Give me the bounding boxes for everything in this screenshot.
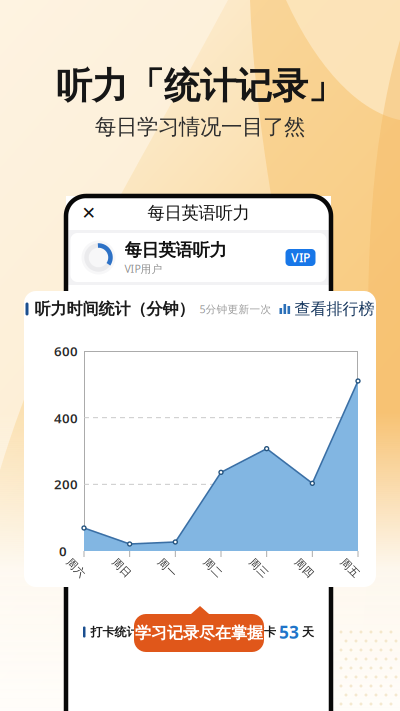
staticText: 打卡 bbox=[252, 625, 276, 639]
staticText: 天 bbox=[302, 625, 314, 639]
staticText: VIP用户 bbox=[124, 261, 162, 276]
staticText: 听力时间统计（分钟） bbox=[34, 299, 194, 319]
staticText: ✕ bbox=[81, 203, 96, 223]
staticText: 打卡统计 bbox=[90, 625, 138, 639]
staticText: 周日 bbox=[111, 561, 133, 574]
staticText: 周六 bbox=[65, 561, 87, 574]
button[interactable]: VIP bbox=[285, 249, 315, 266]
button[interactable]: 查看排行榜 bbox=[279, 299, 374, 319]
staticText: 周二 bbox=[202, 561, 224, 574]
staticText: 每日学习情况一目了然 bbox=[95, 114, 305, 140]
staticText: 听力「统计记录」 bbox=[56, 64, 344, 108]
button[interactable]: Close bbox=[74, 198, 104, 228]
staticText: 0 bbox=[59, 542, 67, 560]
staticText: 53 bbox=[279, 620, 299, 643]
staticText: 周一 bbox=[156, 561, 178, 574]
staticText: 600 bbox=[54, 342, 78, 360]
button[interactable]: 学习记录尽在掌握 bbox=[134, 606, 264, 652]
staticText: 周三 bbox=[248, 561, 270, 574]
staticText: 400 bbox=[54, 409, 78, 427]
staticText: 查看排行榜 bbox=[294, 299, 374, 319]
staticText: 周四 bbox=[293, 561, 315, 574]
staticText: 200 bbox=[54, 475, 78, 493]
staticText: VIP bbox=[291, 249, 310, 265]
staticText: 周五 bbox=[339, 561, 361, 574]
staticText: 5分钟更新一次 bbox=[199, 302, 271, 316]
staticText: 每日英语听力 bbox=[147, 202, 249, 224]
staticText: 每日英语听力 bbox=[124, 239, 226, 260]
staticText: 学习记录尽在掌握 bbox=[135, 623, 263, 643]
